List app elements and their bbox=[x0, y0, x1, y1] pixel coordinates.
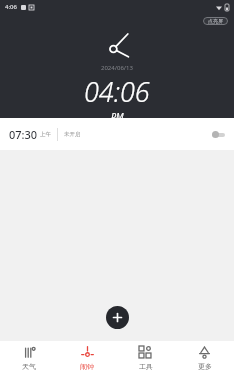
staticText: 07:30 bbox=[9, 127, 38, 142]
button[interactable]: 07:30 bbox=[0, 118, 234, 150]
staticText: 2024/06/13 bbox=[101, 64, 133, 72]
staticText: PM bbox=[111, 110, 124, 118]
staticText: 工具 bbox=[139, 362, 153, 371]
button[interactable]: Toggle alarm bbox=[212, 131, 225, 138]
button[interactable]: 闹钟 bbox=[58, 341, 116, 375]
staticText: 4:06 bbox=[5, 3, 17, 11]
button[interactable]: 工具 bbox=[116, 341, 175, 375]
staticText: 天气 bbox=[22, 362, 36, 371]
staticText: 闹钟 bbox=[80, 362, 94, 371]
button[interactable]: 更多 bbox=[175, 341, 234, 375]
button[interactable]: 点亮屏 bbox=[203, 17, 228, 25]
button[interactable]: Add alarm bbox=[106, 306, 129, 329]
staticText: 04:06 bbox=[84, 73, 150, 110]
staticText: 未开启 bbox=[64, 131, 81, 138]
button[interactable]: 天气 bbox=[0, 341, 58, 375]
staticText: 更多 bbox=[198, 362, 212, 371]
staticText: 点亮屏 bbox=[208, 18, 223, 24]
staticText: 上午 bbox=[40, 131, 51, 138]
